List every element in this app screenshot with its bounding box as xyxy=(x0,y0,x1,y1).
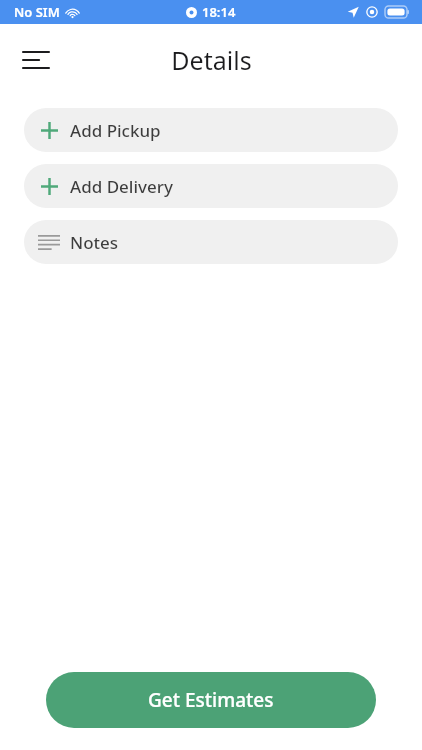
staticText: Details xyxy=(171,43,252,77)
staticText: Notes xyxy=(70,231,119,254)
button[interactable]: Add Delivery xyxy=(24,164,398,208)
button[interactable]: Add Pickup xyxy=(24,108,398,152)
button[interactable]: Get Estimates xyxy=(46,672,376,728)
staticText: No SIM xyxy=(14,3,60,21)
staticText: Add Delivery xyxy=(70,175,173,198)
staticText: 18:14 xyxy=(202,3,236,21)
button[interactable]: Notes xyxy=(24,220,398,264)
button[interactable]: Menu xyxy=(12,36,60,84)
staticText: Get Estimates xyxy=(148,687,274,713)
staticText: Add Pickup xyxy=(70,119,161,142)
